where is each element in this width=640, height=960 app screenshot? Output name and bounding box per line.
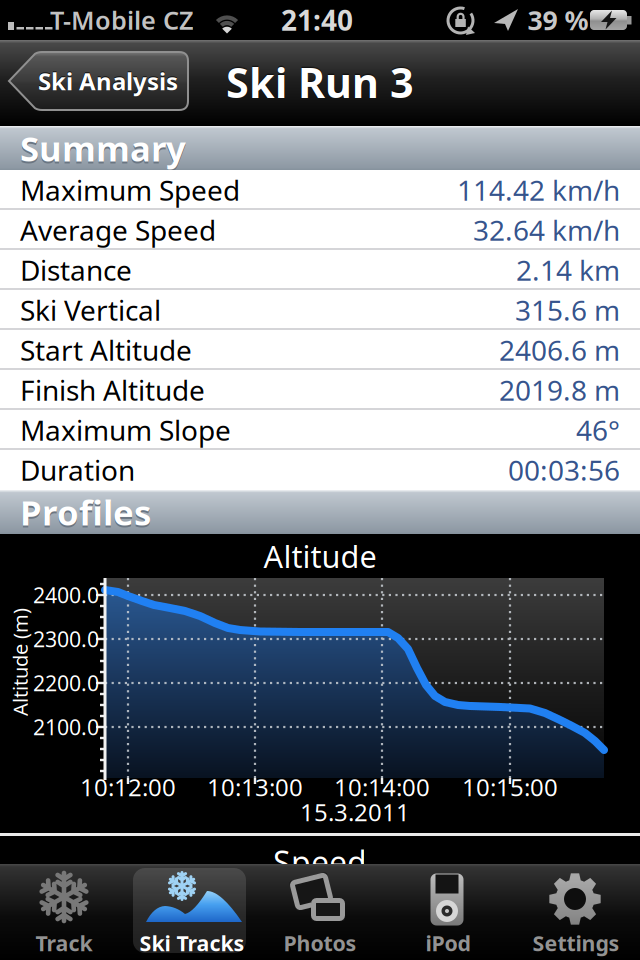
staticText: 10:12:00 — [80, 771, 176, 803]
staticText: 10:14:00 — [334, 771, 430, 803]
button[interactable]: Track — [0, 864, 128, 960]
staticText: 10:13:00 — [207, 771, 303, 803]
staticText: 32.64 km/h — [473, 211, 620, 249]
staticText: Profiles — [20, 489, 151, 535]
staticText: Ski Tracks — [139, 929, 244, 957]
staticText: 2406.6 m — [499, 331, 620, 369]
staticText: 39 % — [527, 2, 588, 38]
staticText: iPod — [425, 929, 470, 957]
staticText: Average Speed — [20, 211, 216, 249]
button[interactable]: Ski Tracks — [128, 864, 256, 960]
staticText: 2300.0 — [33, 625, 99, 653]
staticText: 46° — [576, 411, 620, 449]
staticText: 21:40 — [281, 1, 353, 39]
staticText: 2200.0 — [33, 669, 99, 697]
staticText: Summary — [20, 125, 186, 171]
staticText: Ski Run 3 — [226, 55, 414, 109]
staticText: 00:03:56 — [508, 451, 620, 489]
staticText: Duration — [20, 451, 135, 489]
staticText: 2100.0 — [33, 713, 99, 741]
staticText: Altitude (m) — [0, 649, 74, 675]
staticText: 2.14 km — [516, 251, 620, 289]
staticText: Speed — [273, 841, 367, 883]
staticText: Start Altitude — [20, 331, 192, 369]
staticText: Altitude — [263, 536, 376, 576]
staticText: Ski Vertical — [20, 291, 161, 329]
staticText: Distance — [20, 251, 132, 289]
staticText: 10:15:00 — [462, 771, 558, 803]
staticText: Ski Analysis — [38, 65, 178, 97]
staticText: Photos — [283, 929, 356, 957]
staticText: 315.6 m — [515, 291, 620, 329]
staticText: Maximum Slope — [20, 411, 231, 449]
staticText: Track — [35, 929, 92, 957]
staticText: 15.3.2011 — [300, 796, 410, 828]
button[interactable]: Photos — [256, 864, 384, 960]
staticText: Settings — [532, 929, 619, 957]
button[interactable]: iPod — [384, 864, 512, 960]
staticText: Maximum Speed — [20, 171, 240, 209]
button[interactable]: Settings — [512, 864, 640, 960]
button[interactable]: Back — [8, 52, 188, 110]
staticText: 2400.0 — [33, 581, 99, 609]
staticText: T-Mobile CZ — [50, 3, 194, 37]
staticText: Finish Altitude — [20, 371, 205, 409]
staticText: 114.42 km/h — [457, 171, 620, 209]
staticText: 2019.8 m — [499, 371, 620, 409]
